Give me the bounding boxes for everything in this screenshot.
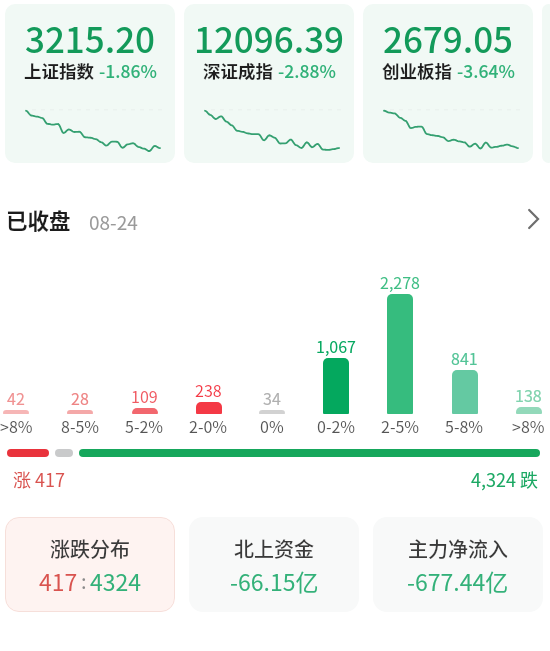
button[interactable]: 3215.20 <box>5 4 175 163</box>
staticText: 北上资金 <box>234 534 314 563</box>
staticText: 深证成指 <box>203 58 273 83</box>
staticText: 238 <box>195 378 222 401</box>
staticText: -1.86% <box>99 58 157 83</box>
other: More <box>527 210 539 228</box>
staticText: 8-5% <box>61 414 100 437</box>
staticText: -677.44亿 <box>407 564 509 597</box>
staticText: 主力净流入 <box>408 534 508 563</box>
button[interactable]: 2679.05 <box>363 4 533 163</box>
staticText: 12096.39 <box>184 12 354 63</box>
staticText: 417 <box>39 564 78 597</box>
button[interactable]: 北上资金 <box>189 517 359 612</box>
staticText: 0% <box>260 414 284 437</box>
button[interactable]: 主力净流入 <box>373 517 543 612</box>
staticText: 5-8% <box>445 414 484 437</box>
staticText: 已收盘 <box>6 204 71 235</box>
staticText: 2-5% <box>381 414 420 437</box>
staticText: 2679.05 <box>363 12 533 63</box>
staticText: 5-2% <box>125 414 164 437</box>
staticText: -3.64% <box>457 58 515 83</box>
staticText: 42 <box>7 386 25 409</box>
button[interactable]: 涨跌分布 <box>5 517 175 612</box>
staticText: 2,278 <box>380 270 420 293</box>
staticText: 2-0% <box>189 414 228 437</box>
staticText: 涨 417 <box>13 466 66 492</box>
staticText: 138 <box>515 383 542 406</box>
staticText: 08-24 <box>89 208 138 236</box>
staticText: 4,324 跌 <box>471 466 538 492</box>
button[interactable]: 12096.39 <box>184 4 354 163</box>
staticText: 109 <box>131 384 158 407</box>
staticText: 4324 <box>90 564 142 597</box>
staticText: 28 <box>71 386 89 409</box>
staticText: 841 <box>451 346 478 369</box>
staticText: -2.88% <box>278 58 336 83</box>
button[interactable]: 已收盘 <box>0 203 550 235</box>
staticText: >8% <box>512 414 545 437</box>
staticText: 0-2% <box>317 414 356 437</box>
staticText: 3215.20 <box>5 12 175 63</box>
staticText: 创业板指 <box>382 58 452 83</box>
staticText: : <box>81 566 87 595</box>
staticText: 涨跌分布 <box>50 534 130 563</box>
staticText: >8% <box>0 414 33 437</box>
staticText: -66.15亿 <box>230 564 319 597</box>
staticText: 上证指数 <box>24 58 94 83</box>
staticText: 34 <box>263 386 281 409</box>
staticText: 1,067 <box>316 334 356 357</box>
